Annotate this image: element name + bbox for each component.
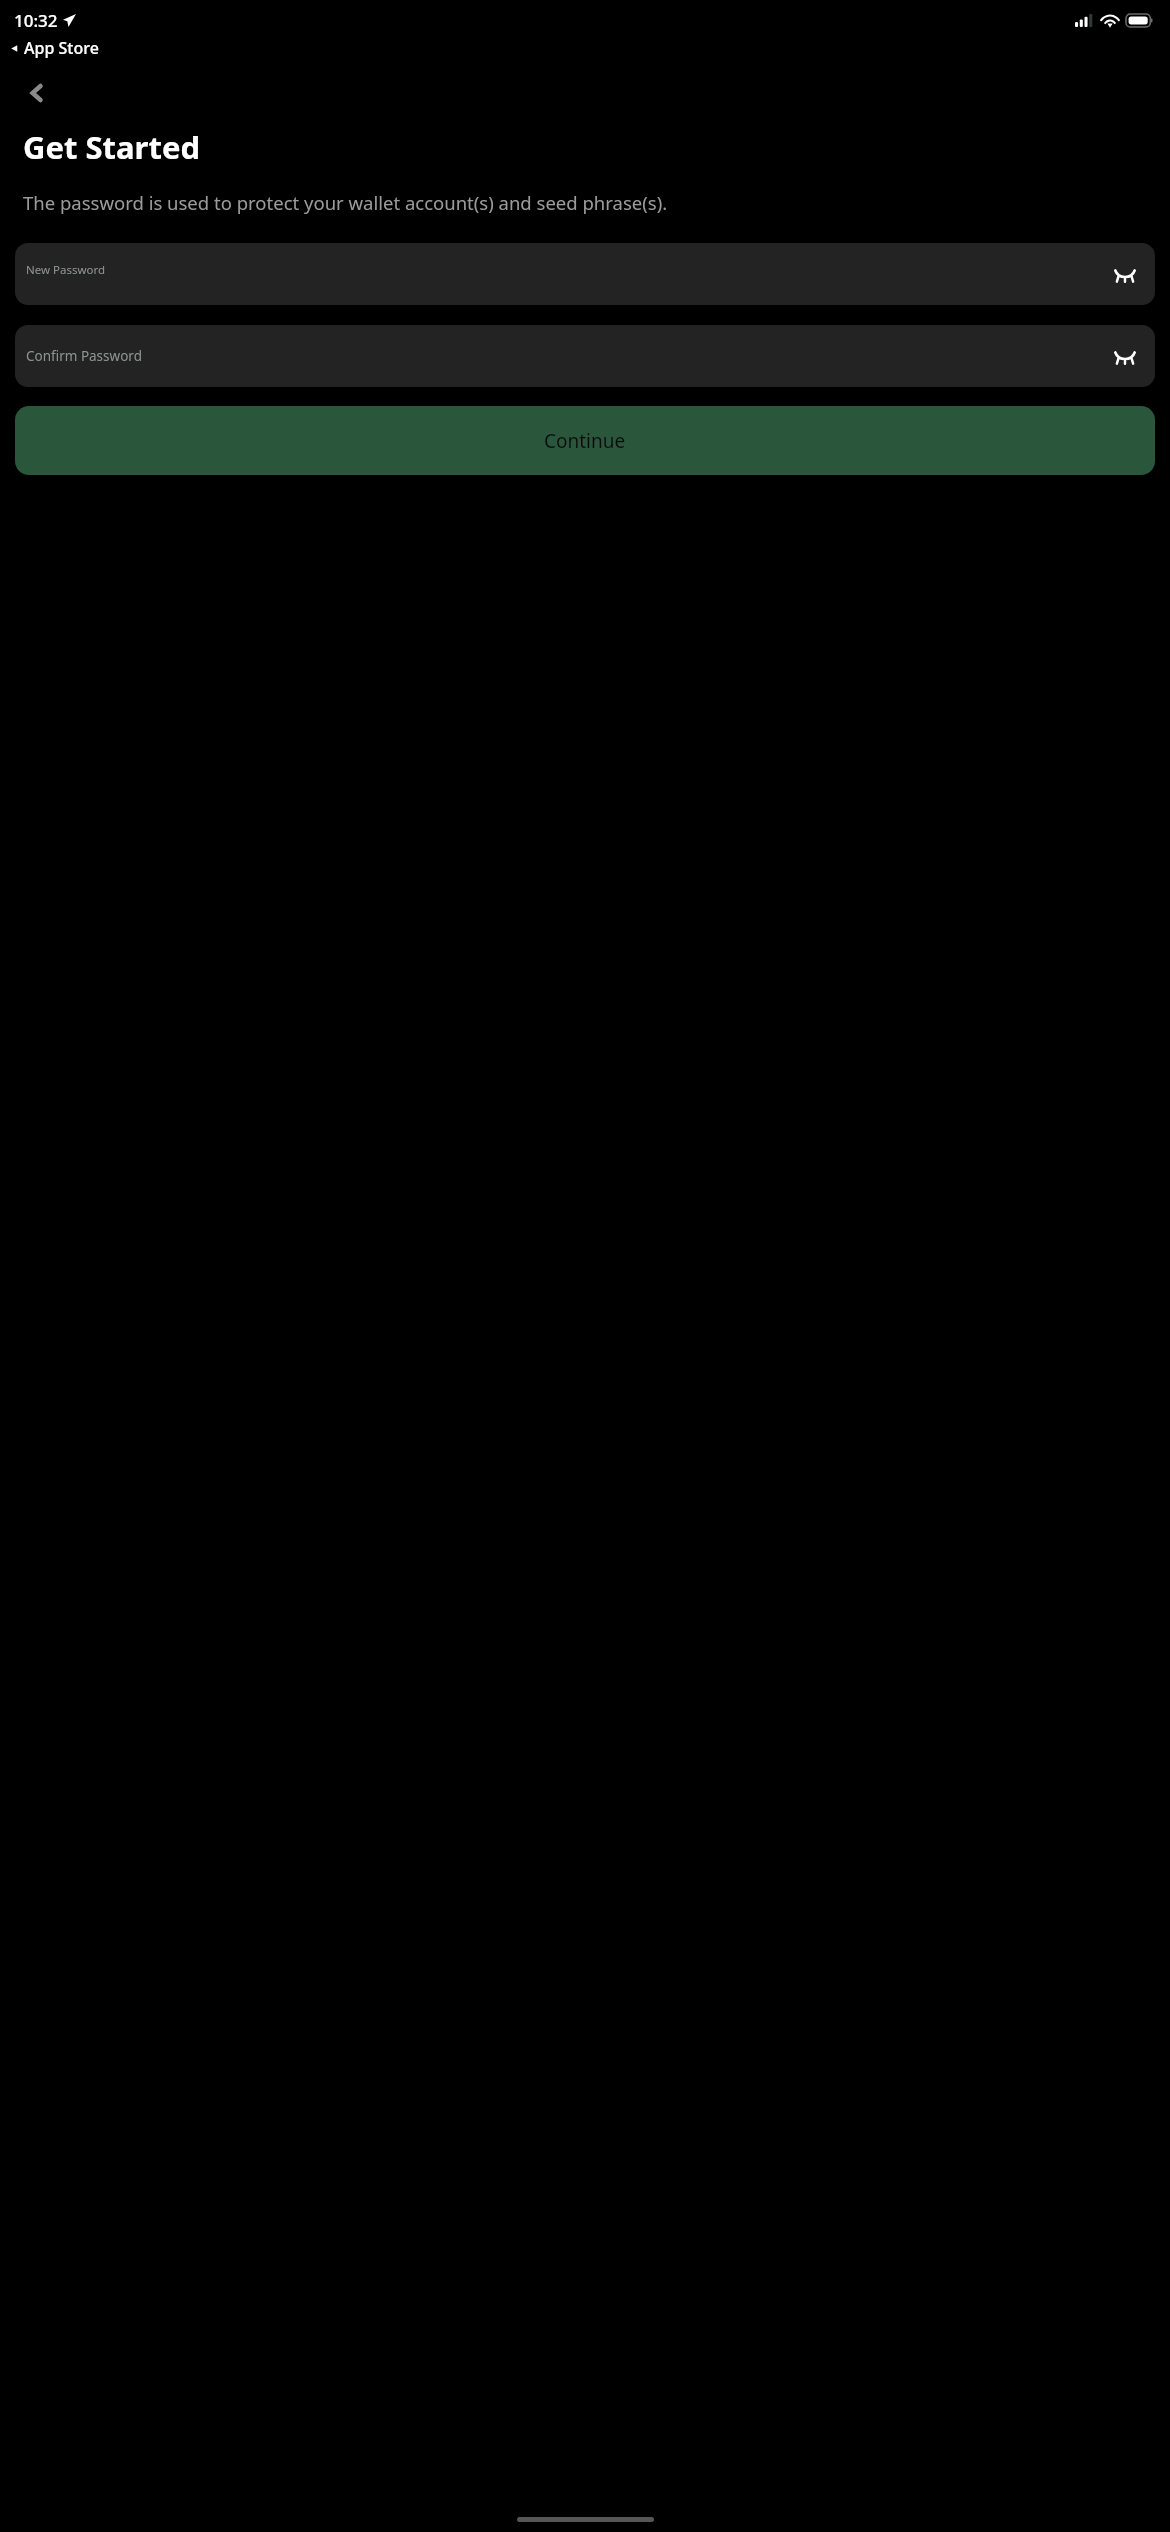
staticText: Confirm Password	[26, 347, 142, 365]
button[interactable]: App Store	[9, 37, 99, 59]
button[interactable]: Continue	[15, 406, 1155, 475]
button[interactable]: Show new password	[1108, 257, 1142, 291]
button[interactable]: New Password	[15, 243, 1155, 305]
staticText: The password is used to protect your wal…	[23, 190, 668, 215]
staticText: Continue	[544, 428, 626, 454]
button[interactable]: Confirm Password	[15, 325, 1155, 387]
staticText: 10:32	[14, 9, 58, 32]
staticText: App Store	[24, 37, 99, 59]
staticText: Get Started	[23, 126, 200, 168]
button[interactable]: Show confirm password	[1108, 339, 1142, 373]
button[interactable]: Back	[17, 73, 57, 113]
staticText: New Password	[26, 262, 106, 278]
